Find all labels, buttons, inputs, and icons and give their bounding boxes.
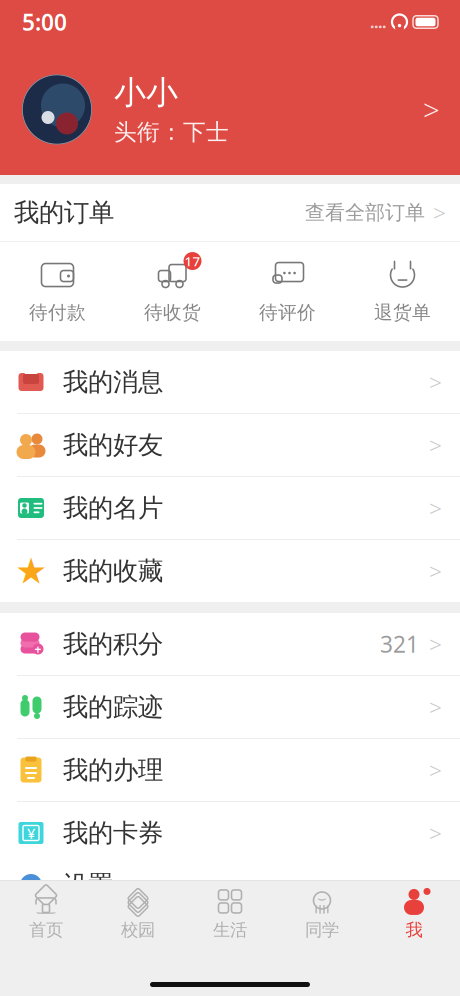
- button[interactable]: 我的名片: [0, 477, 460, 539]
- staticText: >: [429, 818, 442, 848]
- staticText: >: [429, 367, 442, 397]
- staticText: 我的订单: [14, 197, 114, 228]
- staticText: >: [429, 629, 442, 659]
- staticText: 首页: [29, 919, 63, 941]
- button[interactable]: 小小: [0, 44, 460, 175]
- staticText: 校园: [121, 919, 155, 941]
- staticText: 我的消息: [63, 366, 163, 397]
- button[interactable]: 我的订单: [0, 184, 460, 241]
- button[interactable]: ¥: [0, 802, 460, 864]
- staticText: ¥: [27, 823, 35, 843]
- staticText: 我的收藏: [63, 555, 163, 586]
- staticText: 头衔：下士: [114, 118, 229, 146]
- button[interactable]: +: [0, 613, 460, 675]
- button[interactable]: 校园: [92, 888, 184, 941]
- button[interactable]: 待付款: [0, 245, 115, 338]
- staticText: 我的踪迹: [63, 691, 163, 722]
- button[interactable]: 设置: [0, 854, 460, 916]
- button[interactable]: 我的消息: [0, 351, 460, 413]
- button[interactable]: 首页: [0, 888, 92, 941]
- staticText: 待付款: [29, 301, 86, 324]
- button[interactable]: 我的好友: [0, 414, 460, 476]
- staticText: ★: [15, 551, 47, 591]
- button[interactable]: ⌣: [276, 888, 368, 941]
- staticText: 我的积分: [63, 628, 163, 659]
- staticText: 我的办理: [63, 754, 163, 785]
- staticText: 待收货: [144, 301, 201, 324]
- button[interactable]: 我的办理: [0, 739, 460, 801]
- button[interactable]: 生活: [184, 888, 276, 941]
- staticText: ⌣: [317, 891, 327, 906]
- button[interactable]: 退货单: [345, 245, 460, 338]
- staticText: +: [34, 641, 41, 657]
- staticText: 生活: [213, 919, 247, 941]
- button[interactable]: ★: [0, 540, 460, 602]
- staticText: 5:00: [22, 7, 67, 37]
- staticText: 待评价: [259, 301, 316, 324]
- staticText: 查看全部订单: [305, 200, 425, 225]
- staticText: 小小: [114, 73, 178, 112]
- staticText: 17: [184, 252, 200, 270]
- button[interactable]: 我: [368, 888, 460, 941]
- staticText: >: [429, 430, 442, 460]
- staticText: 我的好友: [63, 429, 163, 460]
- staticText: 我的名片: [63, 492, 163, 523]
- staticText: >: [429, 556, 442, 586]
- button[interactable]: 我的踪迹: [0, 676, 460, 738]
- staticText: 退货单: [374, 301, 431, 324]
- staticText: >: [429, 870, 442, 900]
- staticText: >: [429, 493, 442, 523]
- staticText: >: [423, 90, 440, 129]
- staticText: 我: [405, 919, 422, 941]
- staticText: 我的卡券: [63, 817, 163, 848]
- button[interactable]: 待评价: [230, 245, 345, 338]
- staticText: 321: [380, 629, 419, 659]
- button[interactable]: 17: [115, 245, 230, 338]
- staticText: ....: [370, 11, 386, 33]
- staticText: 同学: [305, 919, 339, 941]
- staticText: 设置: [63, 869, 113, 900]
- staticText: >: [433, 197, 446, 227]
- staticText: >: [429, 692, 442, 722]
- staticText: >: [429, 755, 442, 785]
